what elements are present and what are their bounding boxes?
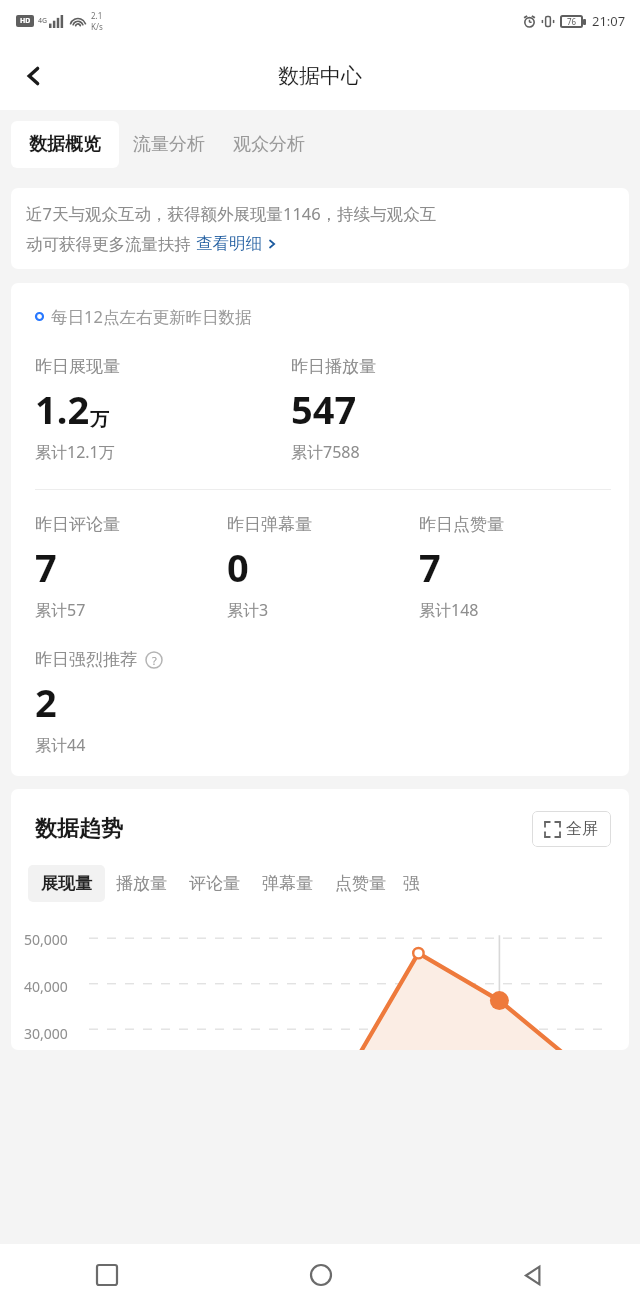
button[interactable]: 流量分析 — [119, 121, 219, 168]
button[interactable]: 播放量 — [105, 865, 178, 902]
button[interactable]: 展现量 — [28, 865, 105, 902]
button[interactable]: 近7天与观众互动，获得额外展现量1146，持续与观众互 — [11, 188, 629, 269]
button[interactable]: Help — [144, 650, 164, 670]
staticText: 查看明细 — [196, 233, 262, 254]
staticText: K/s — [91, 21, 103, 32]
button[interactable]: Back — [10, 52, 58, 100]
button[interactable]: 观众分析 — [219, 121, 319, 168]
button[interactable]: Back — [427, 1244, 640, 1306]
staticText: 昨日弹幕量 — [227, 514, 312, 535]
button[interactable]: Home — [214, 1244, 427, 1306]
staticText: 4G — [38, 16, 48, 26]
staticText: 累计12.1万 — [35, 441, 115, 463]
staticText: 2.1 — [91, 10, 103, 21]
staticText: 数据概览 — [29, 133, 101, 156]
staticText: 评论量 — [189, 873, 240, 894]
button[interactable]: Recents — [0, 1244, 214, 1306]
staticText: 累计57 — [35, 599, 86, 621]
staticText: ? — [152, 653, 157, 668]
staticText: 全屏 — [566, 819, 598, 839]
button[interactable]: 数据概览 — [11, 121, 119, 168]
button[interactable]: 昨日播放量 — [291, 356, 611, 463]
button[interactable]: 评论量 — [178, 865, 251, 902]
staticText: 昨日强烈推荐 — [35, 649, 137, 670]
staticText: 2 — [35, 676, 57, 728]
button[interactable]: 点赞量 — [324, 865, 397, 902]
button[interactable]: 强 — [397, 873, 420, 894]
staticText: 50,000 — [24, 930, 68, 949]
staticText: 累计3 — [227, 599, 269, 621]
staticText: 昨日播放量 — [291, 356, 376, 377]
staticText: 40,000 — [24, 977, 68, 996]
staticText: 动可获得更多流量扶持 — [26, 232, 196, 255]
staticText: 播放量 — [116, 873, 167, 894]
staticText: 0 — [227, 541, 249, 593]
staticText: 万 — [90, 408, 109, 432]
staticText: 累计44 — [35, 734, 86, 756]
staticText: 展现量 — [41, 873, 92, 894]
staticText: HD — [20, 16, 31, 26]
button[interactable]: 弹幕量 — [251, 865, 324, 902]
staticText: 7 — [35, 541, 57, 593]
staticText: 累计148 — [419, 599, 479, 621]
staticText: 30,000 — [24, 1024, 68, 1043]
staticText: 1.2 — [35, 383, 90, 435]
staticText: 数据中心 — [278, 63, 362, 89]
staticText: 昨日评论量 — [35, 514, 120, 535]
staticText: 流量分析 — [133, 133, 205, 156]
staticText: 累计7588 — [291, 441, 360, 463]
button[interactable]: 昨日评论量 — [35, 514, 227, 621]
staticText: 7 — [419, 541, 441, 593]
button[interactable]: 昨日点赞量 — [419, 514, 611, 621]
staticText: 昨日展现量 — [35, 356, 120, 377]
staticText: 数据趋势 — [35, 815, 123, 843]
staticText: 强 — [403, 873, 420, 894]
staticText: 每日12点左右更新昨日数据 — [51, 305, 252, 328]
staticText: 昨日点赞量 — [419, 514, 504, 535]
staticText: 点赞量 — [335, 873, 386, 894]
staticText: 547 — [291, 383, 357, 435]
button[interactable]: 昨日展现量 — [35, 356, 291, 463]
button[interactable]: 全屏 — [532, 811, 611, 847]
staticText: 观众分析 — [233, 133, 305, 156]
button[interactable]: 昨日弹幕量 — [227, 514, 419, 621]
staticText: 近7天与观众互动，获得额外展现量1146，持续与观众互 — [26, 202, 437, 225]
staticText: 76 — [567, 16, 577, 27]
staticText: 21:07 — [592, 12, 626, 30]
staticText: 弹幕量 — [262, 873, 313, 894]
